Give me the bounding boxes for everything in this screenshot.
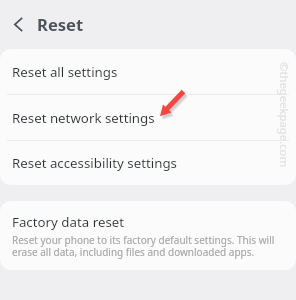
button[interactable]: Reset network settings: [0, 95, 296, 140]
button[interactable]: Factory data reset: [0, 201, 296, 270]
staticText: Reset network settings: [12, 109, 155, 127]
staticText: Reset accessibility settings: [12, 154, 177, 172]
button[interactable]: Back: [4, 9, 33, 40]
staticText: Factory data reset: [12, 213, 125, 231]
staticText: Reset all settings: [12, 63, 118, 81]
button[interactable]: Reset all settings: [0, 49, 296, 94]
staticText: ©thegeekpage.com: [277, 62, 292, 168]
staticText: Reset your phone to its factory default …: [12, 233, 283, 259]
staticText: Reset: [37, 13, 84, 36]
button[interactable]: Reset accessibility settings: [0, 141, 296, 185]
